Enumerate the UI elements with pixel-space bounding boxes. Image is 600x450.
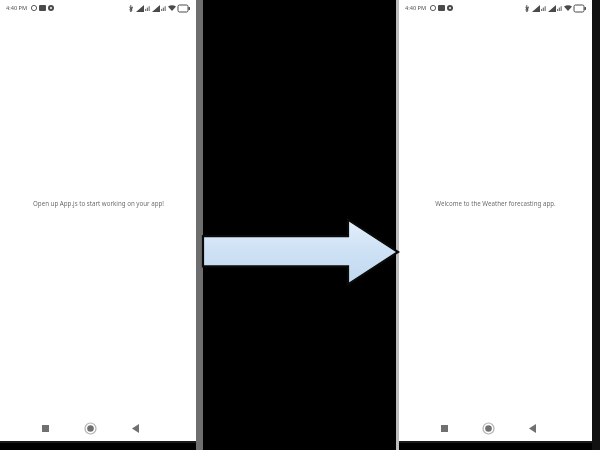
- button[interactable]: Recents: [36, 419, 54, 437]
- staticText: Welcome to the Weather forecasting app.: [435, 199, 556, 207]
- button[interactable]: Home: [80, 418, 100, 438]
- button[interactable]: Back: [523, 419, 541, 437]
- button[interactable]: Home: [478, 418, 498, 438]
- staticText: Open up App.js to start working on your …: [33, 199, 164, 207]
- button[interactable]: Recents: [435, 419, 453, 437]
- staticText: 4:40 PM: [6, 4, 28, 12]
- button[interactable]: Back: [126, 419, 144, 437]
- staticText: 4:40 PM: [405, 4, 427, 12]
